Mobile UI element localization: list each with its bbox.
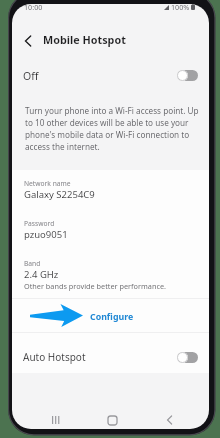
- button[interactable]: Home: [104, 412, 120, 428]
- staticText: Configure: [90, 311, 134, 323]
- staticText: pzuo9051: [24, 228, 68, 241]
- staticText: Band: [24, 259, 41, 268]
- staticText: 2.4 GHz: [24, 268, 59, 281]
- button[interactable]: Configure: [12, 299, 209, 333]
- button[interactable]: Navigate up: [20, 33, 36, 49]
- staticText: Turn your phone into a Wi-Fi access poin…: [25, 105, 199, 152]
- staticText: Network name: [24, 179, 71, 188]
- button[interactable]: Recent apps: [48, 412, 64, 428]
- button[interactable]: Auto Hotspot: [12, 342, 209, 372]
- staticText: Galaxy S2254C9: [24, 188, 95, 201]
- button[interactable]: Band: [12, 257, 209, 293]
- staticText: Auto Hotspot: [23, 350, 86, 364]
- button[interactable]: Network name: [12, 177, 209, 217]
- button[interactable]: Off: [12, 62, 209, 89]
- staticText: 100%: [171, 4, 190, 12]
- button[interactable]: Password: [12, 217, 209, 257]
- staticText: Other bands provide better performance.: [24, 281, 167, 291]
- staticText: Mobile Hotspot: [43, 32, 126, 47]
- button[interactable]: Back: [161, 412, 177, 428]
- staticText: Password: [24, 219, 55, 228]
- staticText: Off: [23, 69, 39, 83]
- staticText: 10:00: [24, 4, 43, 12]
